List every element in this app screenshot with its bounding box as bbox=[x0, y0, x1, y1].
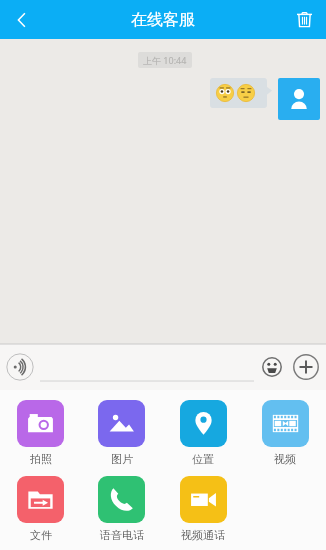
staticText: 上午 10:44 bbox=[143, 54, 187, 66]
button[interactable] bbox=[210, 78, 272, 108]
button[interactable]: More actions bbox=[291, 352, 321, 382]
button[interactable]: 文件 bbox=[0, 476, 81, 542]
button[interactable]: 拍照 bbox=[0, 400, 81, 466]
button[interactable]: Avatar bbox=[278, 78, 320, 120]
button[interactable]: Emoji bbox=[259, 354, 285, 380]
button[interactable]: 视频通话 bbox=[162, 476, 244, 542]
button[interactable]: 视频 bbox=[244, 400, 326, 466]
staticText: 拍照 bbox=[30, 452, 52, 466]
staticText: 位置 bbox=[192, 452, 214, 466]
staticText: 语音电话 bbox=[100, 528, 144, 542]
staticText: 在线客服 bbox=[131, 10, 195, 30]
staticText: 图片 bbox=[111, 452, 133, 466]
staticText: 视频通话 bbox=[181, 528, 225, 542]
staticText: 视频 bbox=[274, 452, 296, 466]
button[interactable]: 位置 bbox=[162, 400, 244, 466]
button[interactable]: 语音电话 bbox=[81, 476, 162, 542]
staticText: 文件 bbox=[30, 528, 52, 542]
button[interactable]: Delete conversation bbox=[282, 0, 326, 39]
button[interactable] bbox=[40, 352, 254, 382]
button[interactable]: Back bbox=[0, 0, 44, 39]
button[interactable]: 图片 bbox=[81, 400, 162, 466]
button[interactable]: Voice message bbox=[5, 352, 35, 382]
